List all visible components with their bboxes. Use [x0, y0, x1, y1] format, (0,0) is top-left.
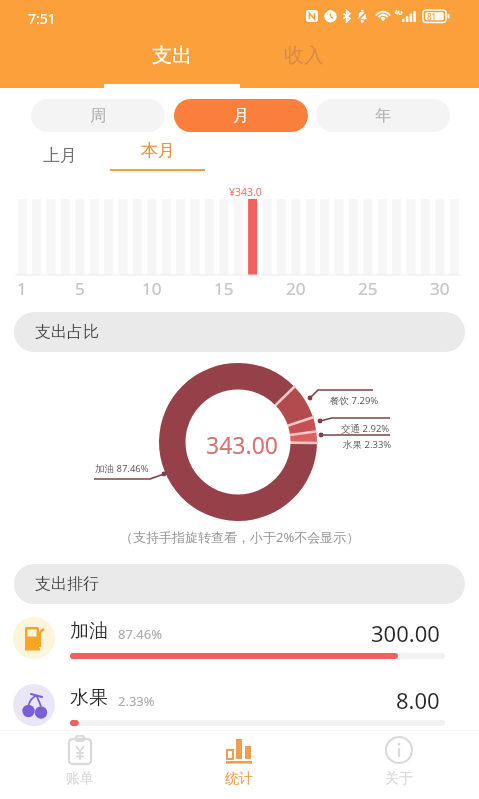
staticText: 上月	[43, 145, 77, 166]
staticText: 加油	[70, 619, 108, 643]
staticText: 关于	[385, 770, 413, 788]
staticText: 支出排行	[35, 574, 99, 594]
staticText: 统计	[225, 770, 253, 788]
staticText: 本月	[141, 140, 175, 161]
staticText: 交通 2.92%	[341, 422, 390, 435]
staticText: 加油 87.46%	[95, 462, 149, 475]
staticText: 5	[75, 277, 85, 300]
staticText: 81	[427, 11, 437, 22]
button[interactable]: 加油	[0, 606, 479, 673]
staticText: 343.00	[206, 429, 278, 460]
staticText: 支出	[152, 43, 192, 68]
staticText: 10	[142, 277, 162, 300]
staticText: 300.00	[371, 618, 440, 648]
staticText: 水果	[70, 686, 108, 710]
button[interactable]: 关于	[319, 730, 479, 799]
staticText: 水果 2.33%	[343, 438, 392, 451]
button[interactable]: 支出	[104, 38, 240, 88]
button[interactable]: 月	[174, 99, 308, 132]
staticText: ¥343.0	[229, 185, 262, 199]
staticText: 周	[90, 106, 106, 126]
staticText: 账单	[66, 770, 94, 788]
button[interactable]: 账单	[0, 730, 159, 799]
staticText: 餐饮 7.29%	[330, 394, 379, 407]
staticText: 收入	[284, 43, 324, 68]
staticText: 15	[214, 277, 234, 300]
button[interactable]: 收入	[236, 38, 372, 88]
staticText: 8.00	[396, 685, 440, 715]
button[interactable]: 年	[316, 99, 450, 132]
staticText: （支持手指旋转查看，小于2%不会显示）	[120, 528, 360, 546]
button[interactable]: 上月	[22, 138, 97, 172]
staticText: 7:51	[28, 9, 56, 28]
button[interactable]: 水果	[0, 673, 479, 740]
staticText: 25	[358, 277, 378, 300]
staticText: 月	[233, 106, 249, 126]
button[interactable]: 统计	[159, 730, 319, 799]
staticText: 30	[430, 277, 450, 300]
staticText: 2.33%	[118, 692, 155, 710]
staticText: 年	[375, 106, 391, 126]
staticText: 20	[286, 277, 306, 300]
staticText: 1	[17, 277, 27, 300]
staticText: 支出占比	[35, 322, 99, 342]
button[interactable]: 本月	[110, 138, 205, 176]
staticText: 87.46%	[118, 625, 163, 643]
button[interactable]: 周	[31, 99, 165, 132]
